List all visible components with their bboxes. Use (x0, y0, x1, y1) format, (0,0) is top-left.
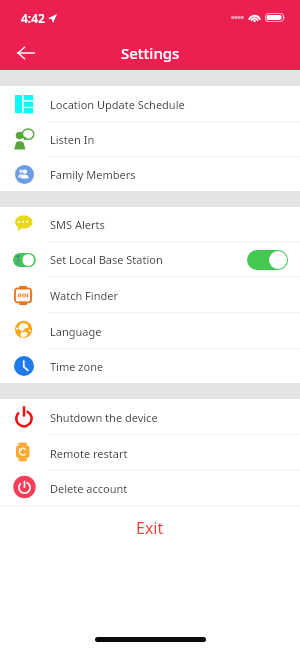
button[interactable]: Language (0, 313, 300, 349)
button[interactable]: Watch Finder (0, 277, 300, 313)
button[interactable]: Remote restart (0, 435, 300, 471)
staticText: Listen In (50, 132, 95, 147)
staticText: Watch Finder (50, 288, 118, 303)
staticText: Shutdown the device (50, 410, 158, 425)
staticText: Settings (121, 43, 180, 63)
staticText: SMS Alerts (50, 217, 105, 232)
button[interactable]: Back (11, 38, 41, 68)
button[interactable]: Exit (120, 513, 180, 543)
button[interactable]: SMS Alerts (0, 207, 300, 242)
button[interactable]: Family Members (0, 157, 300, 191)
staticText: Time zone (50, 359, 104, 374)
button[interactable]: Set Local Base Station toggle (247, 250, 288, 270)
staticText: Delete account (50, 481, 128, 496)
button[interactable]: Time zone (0, 349, 300, 383)
button[interactable]: Delete account (0, 471, 300, 505)
staticText: Set Local Base Station (50, 252, 163, 267)
button[interactable]: Shutdown the device (0, 399, 300, 435)
button[interactable]: Listen In (0, 122, 300, 157)
staticText: Location Update Schedule (50, 97, 185, 112)
staticText: 4:42 (21, 10, 45, 26)
staticText: Language (50, 324, 102, 339)
button[interactable]: Set Local Base Station (0, 242, 300, 277)
button[interactable]: Location Update Schedule (0, 86, 300, 122)
staticText: Family Members (50, 167, 136, 182)
staticText: Remote restart (50, 446, 128, 461)
